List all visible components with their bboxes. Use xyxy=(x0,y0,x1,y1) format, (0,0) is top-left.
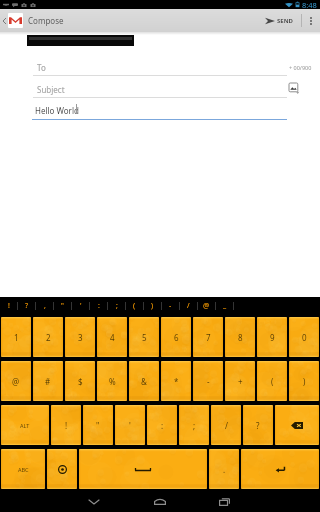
button[interactable]: ? xyxy=(18,297,35,315)
staticText: 0 xyxy=(302,332,307,343)
button[interactable]: 4 xyxy=(97,317,127,357)
button[interactable]: Enter xyxy=(241,449,319,489)
staticText: ? xyxy=(256,420,260,431)
button[interactable]: 1 xyxy=(1,317,31,357)
button[interactable]: ! xyxy=(0,297,17,315)
staticText: - xyxy=(207,376,210,387)
button[interactable]: : xyxy=(147,405,177,445)
staticText: + 00/900 xyxy=(289,64,312,71)
button[interactable]: # xyxy=(33,361,63,401)
button[interactable]: " xyxy=(54,297,71,315)
button[interactable]: ALT xyxy=(1,405,49,445)
button[interactable]: 7 xyxy=(193,317,223,357)
button[interactable]: Back xyxy=(78,491,110,512)
staticText: ) xyxy=(151,301,154,311)
button[interactable]: 8 xyxy=(225,317,255,357)
staticText: # xyxy=(45,376,51,387)
staticText: ; xyxy=(193,420,196,431)
button[interactable]: $ xyxy=(65,361,95,401)
button[interactable]: + xyxy=(225,361,255,401)
button[interactable]: @ xyxy=(198,297,215,315)
other: Emoji xyxy=(58,465,67,474)
button[interactable]: 2 xyxy=(33,317,63,357)
button[interactable]: ABC xyxy=(1,449,45,489)
staticText: . xyxy=(223,464,226,475)
staticText: 7 xyxy=(206,332,211,343)
staticText: 6 xyxy=(174,332,179,343)
button[interactable]: Home xyxy=(144,491,176,512)
button[interactable]: ( xyxy=(257,361,287,401)
button[interactable]: ( xyxy=(126,297,143,315)
button[interactable]: & xyxy=(129,361,159,401)
staticText: 1 xyxy=(14,332,19,343)
button[interactable]: Insert photo xyxy=(289,83,300,94)
staticText: ' xyxy=(129,420,131,431)
staticText: " xyxy=(61,301,64,311)
staticText: - xyxy=(169,301,172,311)
button[interactable]: " xyxy=(83,405,113,445)
button[interactable]: ' xyxy=(115,405,145,445)
staticText: : xyxy=(98,301,100,311)
button[interactable]: 5 xyxy=(129,317,159,357)
staticText: * xyxy=(174,376,179,387)
button[interactable]: Emoji xyxy=(47,449,77,489)
staticText: 4 xyxy=(110,332,115,343)
button[interactable]: 0 xyxy=(289,317,319,357)
staticText: 3 xyxy=(78,332,83,343)
button[interactable]: Recent apps xyxy=(208,491,240,512)
staticText: ! xyxy=(8,301,10,311)
button[interactable]: , xyxy=(36,297,53,315)
button[interactable]: ) xyxy=(289,361,319,401)
button[interactable]: SEND xyxy=(261,9,297,32)
staticText: 9 xyxy=(270,332,275,343)
staticText: / xyxy=(187,301,190,311)
button[interactable]: ' xyxy=(72,297,89,315)
staticText: @ xyxy=(203,301,210,311)
other: Space xyxy=(135,467,151,471)
button[interactable]: 6 xyxy=(161,317,191,357)
button[interactable]: @ xyxy=(1,361,31,401)
staticText: To xyxy=(37,62,46,73)
button[interactable]: Navigate up xyxy=(0,9,8,32)
staticText: SEND xyxy=(277,17,293,25)
staticText: / xyxy=(225,420,228,431)
button[interactable]: 3 xyxy=(65,317,95,357)
staticText: ! xyxy=(65,420,68,431)
staticText: Compose xyxy=(28,15,64,26)
button[interactable]: / xyxy=(211,405,241,445)
button[interactable]: ) xyxy=(144,297,161,315)
staticText: @ xyxy=(12,376,20,387)
staticText: 5 xyxy=(142,332,147,343)
button[interactable]: % xyxy=(97,361,127,401)
staticText: ' xyxy=(80,301,82,311)
button[interactable]: - xyxy=(162,297,179,315)
button[interactable]: Backspace xyxy=(275,405,319,445)
button[interactable]: ? xyxy=(243,405,273,445)
button[interactable]: * xyxy=(161,361,191,401)
staticText: ALT xyxy=(20,422,30,429)
staticText: + xyxy=(238,376,243,387)
staticText: ABC xyxy=(18,466,29,473)
button[interactable]: - xyxy=(193,361,223,401)
staticText: , xyxy=(44,301,46,311)
button[interactable]: ! xyxy=(51,405,81,445)
button[interactable]: Space xyxy=(79,449,207,489)
staticText: : xyxy=(161,420,164,431)
staticText: ( xyxy=(133,301,136,311)
button[interactable]: / xyxy=(180,297,197,315)
other: Backspace xyxy=(291,422,303,429)
staticText: 8:48 xyxy=(302,0,317,9)
button[interactable]: : xyxy=(90,297,107,315)
staticText: Subject xyxy=(37,84,65,95)
button[interactable]: . xyxy=(209,449,239,489)
button[interactable]: ; xyxy=(108,297,125,315)
button[interactable]: ; xyxy=(179,405,209,445)
staticText: ; xyxy=(116,301,118,311)
button[interactable]: More options xyxy=(302,9,320,32)
button[interactable]: _ xyxy=(216,297,233,315)
button[interactable]: 9 xyxy=(257,317,287,357)
staticText: & xyxy=(141,376,147,387)
staticText: " xyxy=(96,420,100,431)
staticText: $ xyxy=(78,376,83,387)
staticText: ? xyxy=(25,301,29,311)
